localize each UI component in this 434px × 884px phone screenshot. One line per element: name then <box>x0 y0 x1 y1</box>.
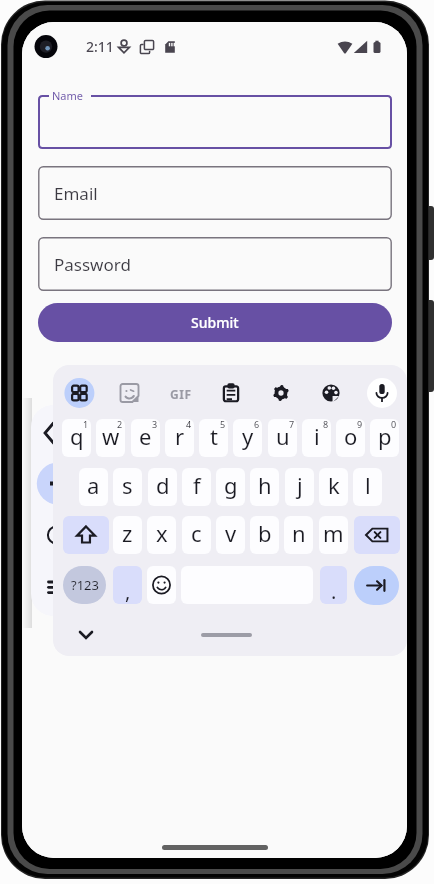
button[interactable]: Email <box>38 166 392 220</box>
button[interactable]: b <box>250 516 279 554</box>
button[interactable]: d <box>148 468 177 506</box>
button[interactable]: w <box>96 419 125 457</box>
staticText: 3 <box>152 419 158 430</box>
staticText: c <box>191 518 202 548</box>
button[interactable]: p <box>370 419 399 457</box>
button[interactable]: s <box>113 468 142 506</box>
staticText: Email <box>54 182 98 205</box>
button[interactable]: c <box>182 516 211 554</box>
button[interactable]: g <box>216 468 245 506</box>
staticText: GIF <box>170 386 192 402</box>
staticText: 1 <box>83 419 89 430</box>
staticText: 2:11 <box>86 37 114 56</box>
button[interactable]: a <box>79 468 108 506</box>
staticText: 8 <box>323 419 329 430</box>
staticText: r <box>175 421 185 451</box>
button[interactable]: . <box>320 566 347 604</box>
staticText: z <box>122 518 133 548</box>
button[interactable]: Name <box>38 95 392 149</box>
button[interactable]: z <box>113 516 142 554</box>
staticText: i <box>314 421 320 451</box>
staticText: f <box>193 470 201 500</box>
button[interactable]: q <box>62 419 91 457</box>
button[interactable]: Backspace <box>354 516 400 554</box>
staticText: v <box>225 518 237 548</box>
button[interactable]: t <box>199 419 228 457</box>
staticText: h <box>258 470 272 500</box>
button[interactable]: Emoji <box>147 566 176 604</box>
staticText: Submit <box>191 313 239 332</box>
staticText: 7 <box>289 419 295 430</box>
button[interactable]: h <box>250 468 279 506</box>
button[interactable]: k <box>319 468 348 506</box>
staticText: g <box>224 470 238 500</box>
staticText: u <box>276 421 290 451</box>
staticText: o <box>344 421 358 451</box>
button[interactable]: i <box>302 419 331 457</box>
staticText: ?123 <box>71 576 99 594</box>
staticText: 9 <box>357 419 363 430</box>
button[interactable]: o <box>336 419 365 457</box>
button[interactable]: m <box>319 516 348 554</box>
staticText: e <box>139 421 152 451</box>
staticText: 5 <box>220 419 226 430</box>
staticText: x <box>156 518 168 548</box>
button[interactable]: j <box>285 468 314 506</box>
staticText: n <box>292 518 306 548</box>
staticText: . <box>331 578 337 604</box>
staticText: q <box>70 421 84 451</box>
staticText: 2 <box>117 419 123 430</box>
staticText: t <box>210 421 218 451</box>
staticText: 0 <box>391 419 397 430</box>
button[interactable]: r <box>165 419 194 457</box>
staticText: a <box>87 470 100 500</box>
button[interactable]: Enter <box>354 566 399 605</box>
staticText: m <box>323 518 344 548</box>
staticText: k <box>328 470 340 500</box>
staticText: l <box>365 470 371 500</box>
staticText: w <box>102 421 120 451</box>
button[interactable]: f <box>182 468 211 506</box>
button[interactable]: e <box>131 419 160 457</box>
button[interactable]: Submit <box>38 303 392 342</box>
staticText: 4 <box>186 419 192 430</box>
button[interactable]: , <box>113 566 142 604</box>
staticText: y <box>242 421 254 451</box>
button[interactable]: l <box>353 468 382 506</box>
staticText: s <box>122 470 133 500</box>
staticText: 6 <box>254 419 260 430</box>
button[interactable]: v <box>216 516 245 554</box>
staticText: Name <box>52 88 84 103</box>
button[interactable]: u <box>268 419 297 457</box>
button[interactable]: Shift <box>63 516 109 554</box>
staticText: Password <box>54 253 131 276</box>
button[interactable]: ?123 <box>63 566 106 604</box>
button[interactable]: x <box>147 516 176 554</box>
button[interactable]: Password <box>38 237 392 291</box>
staticText: , <box>125 578 131 604</box>
button[interactable]: n <box>284 516 313 554</box>
staticText: p <box>378 421 392 451</box>
button[interactable]: y <box>233 419 262 457</box>
staticText: j <box>297 470 303 500</box>
staticText: d <box>156 470 170 500</box>
staticText: b <box>258 518 272 548</box>
